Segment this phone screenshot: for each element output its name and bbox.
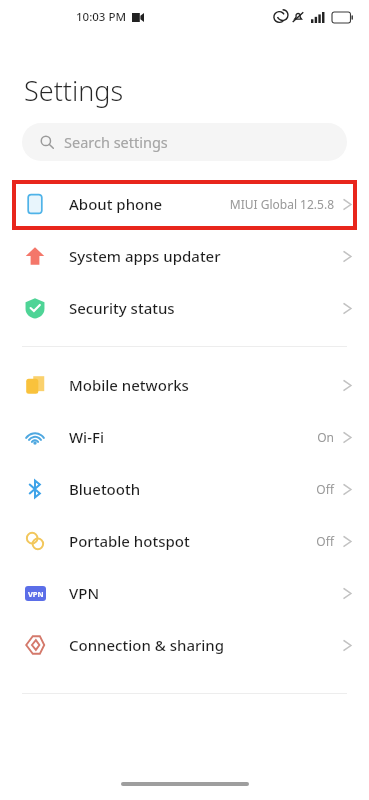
staticText: Off <box>316 481 334 497</box>
button[interactable]: Connection & sharing <box>0 619 369 671</box>
staticText: Connection & sharing <box>69 635 225 655</box>
button[interactable]: Search settings <box>22 123 347 161</box>
staticText: VPN <box>28 589 44 599</box>
staticText: Mobile networks <box>69 375 189 395</box>
staticText: Bluetooth <box>69 479 141 499</box>
button[interactable]: Wi-Fi <box>0 411 369 463</box>
staticText: MIUI Global 12.5.8 <box>229 196 334 212</box>
staticText: 10:03 PM <box>76 9 127 25</box>
button[interactable]: Bluetooth <box>0 463 369 515</box>
button[interactable]: Security status <box>0 282 369 334</box>
staticText: VPN <box>69 583 100 603</box>
button[interactable]: System apps updater <box>0 230 369 282</box>
staticText: Portable hotspot <box>69 531 190 551</box>
button[interactable]: Mobile networks <box>0 359 369 411</box>
staticText: About phone <box>69 194 163 214</box>
staticText: Off <box>316 533 334 549</box>
staticText: Search settings <box>64 132 168 152</box>
staticText: Security status <box>69 298 175 318</box>
button[interactable]: Portable hotspot <box>0 515 369 567</box>
button[interactable]: About phone <box>0 178 369 230</box>
button[interactable]: VPN <box>0 567 369 619</box>
staticText: Wi-Fi <box>69 427 104 447</box>
staticText: On <box>317 429 334 445</box>
staticText: System apps updater <box>69 246 221 266</box>
staticText: Settings <box>24 72 124 109</box>
